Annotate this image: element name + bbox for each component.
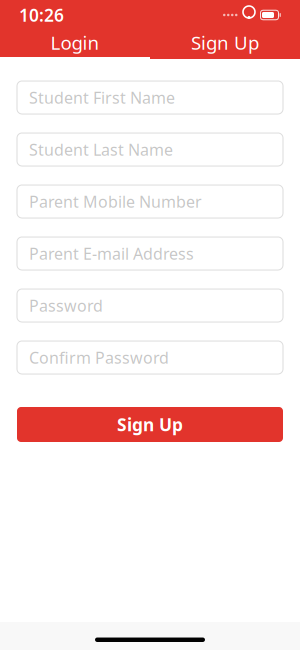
staticText: Student Last Name [29, 139, 173, 160]
staticText: 10:26 [19, 3, 64, 26]
button[interactable]: Student First Name [17, 81, 283, 114]
staticText: Password [29, 295, 103, 316]
button[interactable]: Password [17, 289, 283, 322]
staticText: Parent Mobile Number [29, 191, 202, 212]
staticText: Login [50, 30, 99, 55]
staticText: Student First Name [29, 87, 175, 108]
staticText: Parent E-mail Address [29, 243, 194, 264]
button[interactable]: Parent E-mail Address [17, 237, 283, 270]
button[interactable]: Sign Up [17, 407, 283, 442]
staticText: Confirm Password [29, 347, 169, 368]
button[interactable]: Parent Mobile Number [17, 185, 283, 218]
button[interactable]: Confirm Password [17, 341, 283, 374]
button[interactable]: Sign Up [150, 30, 300, 55]
button[interactable]: Student Last Name [17, 133, 283, 166]
button[interactable]: Login [0, 30, 150, 55]
staticText: Sign Up [191, 30, 259, 55]
staticText: Sign Up [117, 413, 183, 436]
